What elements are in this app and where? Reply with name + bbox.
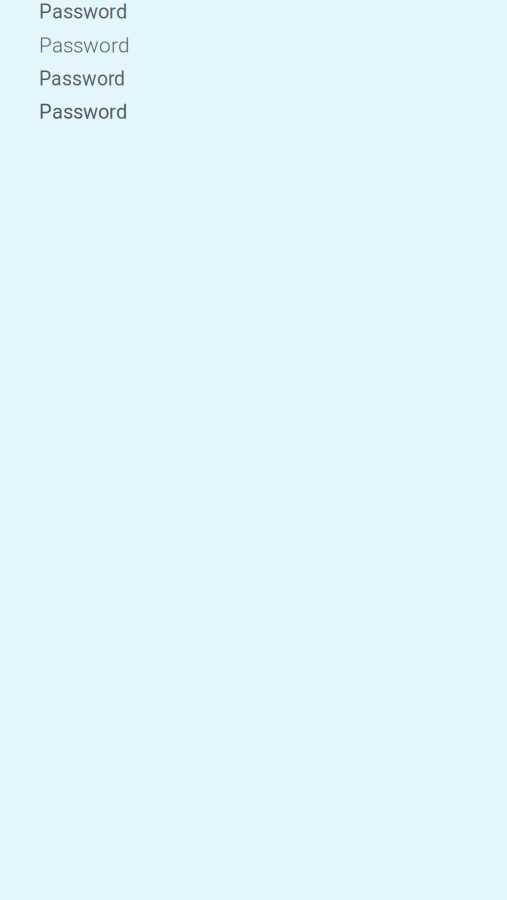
staticText: Password <box>39 33 129 58</box>
staticText: Password <box>39 100 127 124</box>
staticText: Password <box>39 68 125 90</box>
staticText: Password <box>39 0 127 23</box>
